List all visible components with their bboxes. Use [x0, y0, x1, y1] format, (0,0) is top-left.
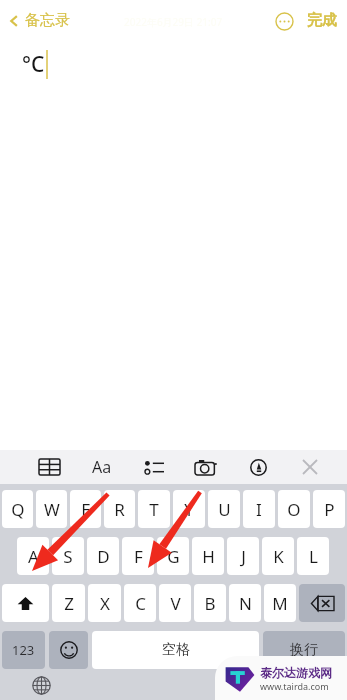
button[interactable]: 空格 [92, 631, 259, 669]
button[interactable]: N [229, 584, 261, 622]
staticText: Y [184, 498, 194, 521]
button[interactable]: W [36, 490, 67, 528]
button[interactable]: D [87, 537, 119, 575]
button[interactable]: M [264, 584, 296, 622]
button[interactable]: B [194, 584, 226, 622]
staticText: 备忘录 [25, 11, 70, 30]
button[interactable]: Markup [243, 452, 273, 482]
staticText: www.tairda.com [260, 680, 329, 692]
staticText: Aa [92, 456, 112, 478]
staticText: P [324, 498, 335, 521]
button[interactable]: T [138, 490, 170, 528]
staticText: I [256, 498, 262, 521]
staticText: F [134, 545, 143, 568]
button[interactable]: R [104, 490, 135, 528]
staticText: B [204, 592, 216, 615]
button[interactable]: Switch keyboard language [26, 670, 56, 700]
button[interactable]: Shift [2, 584, 49, 622]
staticText: 空格 [162, 641, 190, 659]
button[interactable]: A [17, 537, 49, 575]
staticText: X [100, 592, 110, 615]
button[interactable]: K [262, 537, 294, 575]
staticText: D [97, 545, 110, 568]
staticText: 完成 [307, 11, 337, 30]
staticText: H [202, 545, 215, 568]
button[interactable]: Y [173, 490, 205, 528]
staticText: N [239, 592, 252, 615]
staticText: S [63, 545, 73, 568]
staticText: G [167, 545, 180, 568]
button[interactable]: S [52, 537, 84, 575]
staticText: J [241, 545, 246, 568]
staticText: Q [11, 498, 25, 521]
button[interactable]: J [227, 537, 259, 575]
button[interactable]: 123 [2, 631, 45, 669]
button[interactable]: Backspace [299, 584, 345, 622]
button[interactable]: Q [2, 490, 33, 528]
staticText: M [272, 592, 288, 615]
staticText: L [309, 545, 318, 568]
staticText: °C [22, 50, 45, 79]
staticText: W [44, 498, 60, 521]
button[interactable]: V [159, 584, 191, 622]
button[interactable]: E [70, 490, 101, 528]
button[interactable]: Table [34, 452, 64, 482]
staticText: R [114, 498, 125, 521]
button[interactable]: Checklist [139, 452, 169, 482]
button[interactable]: X [88, 584, 121, 622]
button[interactable]: Close keyboard [295, 452, 325, 482]
staticText: V [170, 592, 181, 615]
staticText: O [287, 498, 301, 521]
staticText: 2022年6月29日 21:07 [124, 15, 223, 29]
button[interactable]: L [297, 537, 329, 575]
staticText: A [28, 545, 39, 568]
button[interactable]: Emoji [49, 631, 88, 669]
button[interactable]: Camera [191, 452, 221, 482]
button[interactable]: 完成 [305, 7, 339, 34]
button[interactable]: 换行 [263, 631, 345, 669]
staticText: E [81, 498, 91, 521]
staticText: 换行 [290, 641, 318, 659]
staticText: U [218, 498, 231, 521]
button[interactable]: U [208, 490, 240, 528]
staticText: T [149, 498, 159, 521]
staticText: 泰尔达游戏网 [260, 665, 332, 680]
button[interactable]: Z [52, 584, 85, 622]
button[interactable]: O [278, 490, 310, 528]
staticText: C [135, 592, 146, 615]
button[interactable]: C [124, 584, 156, 622]
staticText: K [273, 545, 284, 568]
button[interactable]: H [192, 537, 224, 575]
button[interactable]: I [243, 490, 275, 528]
staticText: Z [64, 592, 74, 615]
button[interactable]: F [122, 537, 154, 575]
button[interactable]: 备忘录 [6, 11, 70, 30]
staticText: 123 [12, 641, 35, 659]
button[interactable]: P [313, 490, 345, 528]
button[interactable]: G [157, 537, 189, 575]
button[interactable]: More options [271, 8, 297, 34]
button[interactable]: Text format [87, 452, 117, 482]
